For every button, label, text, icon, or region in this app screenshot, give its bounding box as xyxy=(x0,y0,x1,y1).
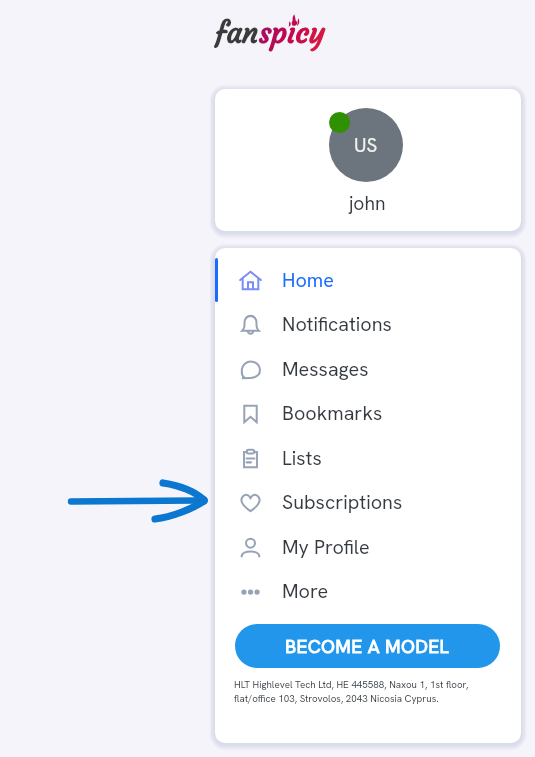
button[interactable]: Home xyxy=(215,258,521,302)
staticText: Notifications xyxy=(282,311,392,337)
button[interactable]: BECOME A MODEL xyxy=(235,624,500,668)
staticText: BECOME A MODEL xyxy=(285,634,450,658)
button[interactable]: Lists xyxy=(215,436,521,480)
staticText: Bookmarks xyxy=(282,400,383,426)
staticText: Home xyxy=(282,267,334,293)
staticText: fan xyxy=(215,15,259,51)
staticText: Subscriptions xyxy=(282,489,403,515)
staticText: john xyxy=(349,191,386,216)
button[interactable]: Notifications xyxy=(215,302,521,346)
button[interactable]: fanspicy home xyxy=(215,15,325,69)
button[interactable]: Bookmarks xyxy=(215,391,521,435)
staticText: US xyxy=(354,133,378,158)
button[interactable]: Messages xyxy=(215,347,521,391)
staticText: Messages xyxy=(282,356,369,382)
staticText: My Profile xyxy=(282,534,370,560)
button[interactable]: More xyxy=(215,569,521,613)
staticText: spicy xyxy=(259,15,325,51)
button[interactable]: Profile avatar, online xyxy=(329,108,403,182)
button[interactable]: Subscriptions xyxy=(215,480,521,524)
other: Arrow pointing to Subscriptions xyxy=(64,476,212,526)
staticText: More xyxy=(282,578,329,604)
staticText: Lists xyxy=(282,445,322,471)
staticText: HLT Highlevel Tech Ltd, HE 445588, Naxou… xyxy=(234,678,469,705)
button[interactable]: My Profile xyxy=(215,525,521,569)
